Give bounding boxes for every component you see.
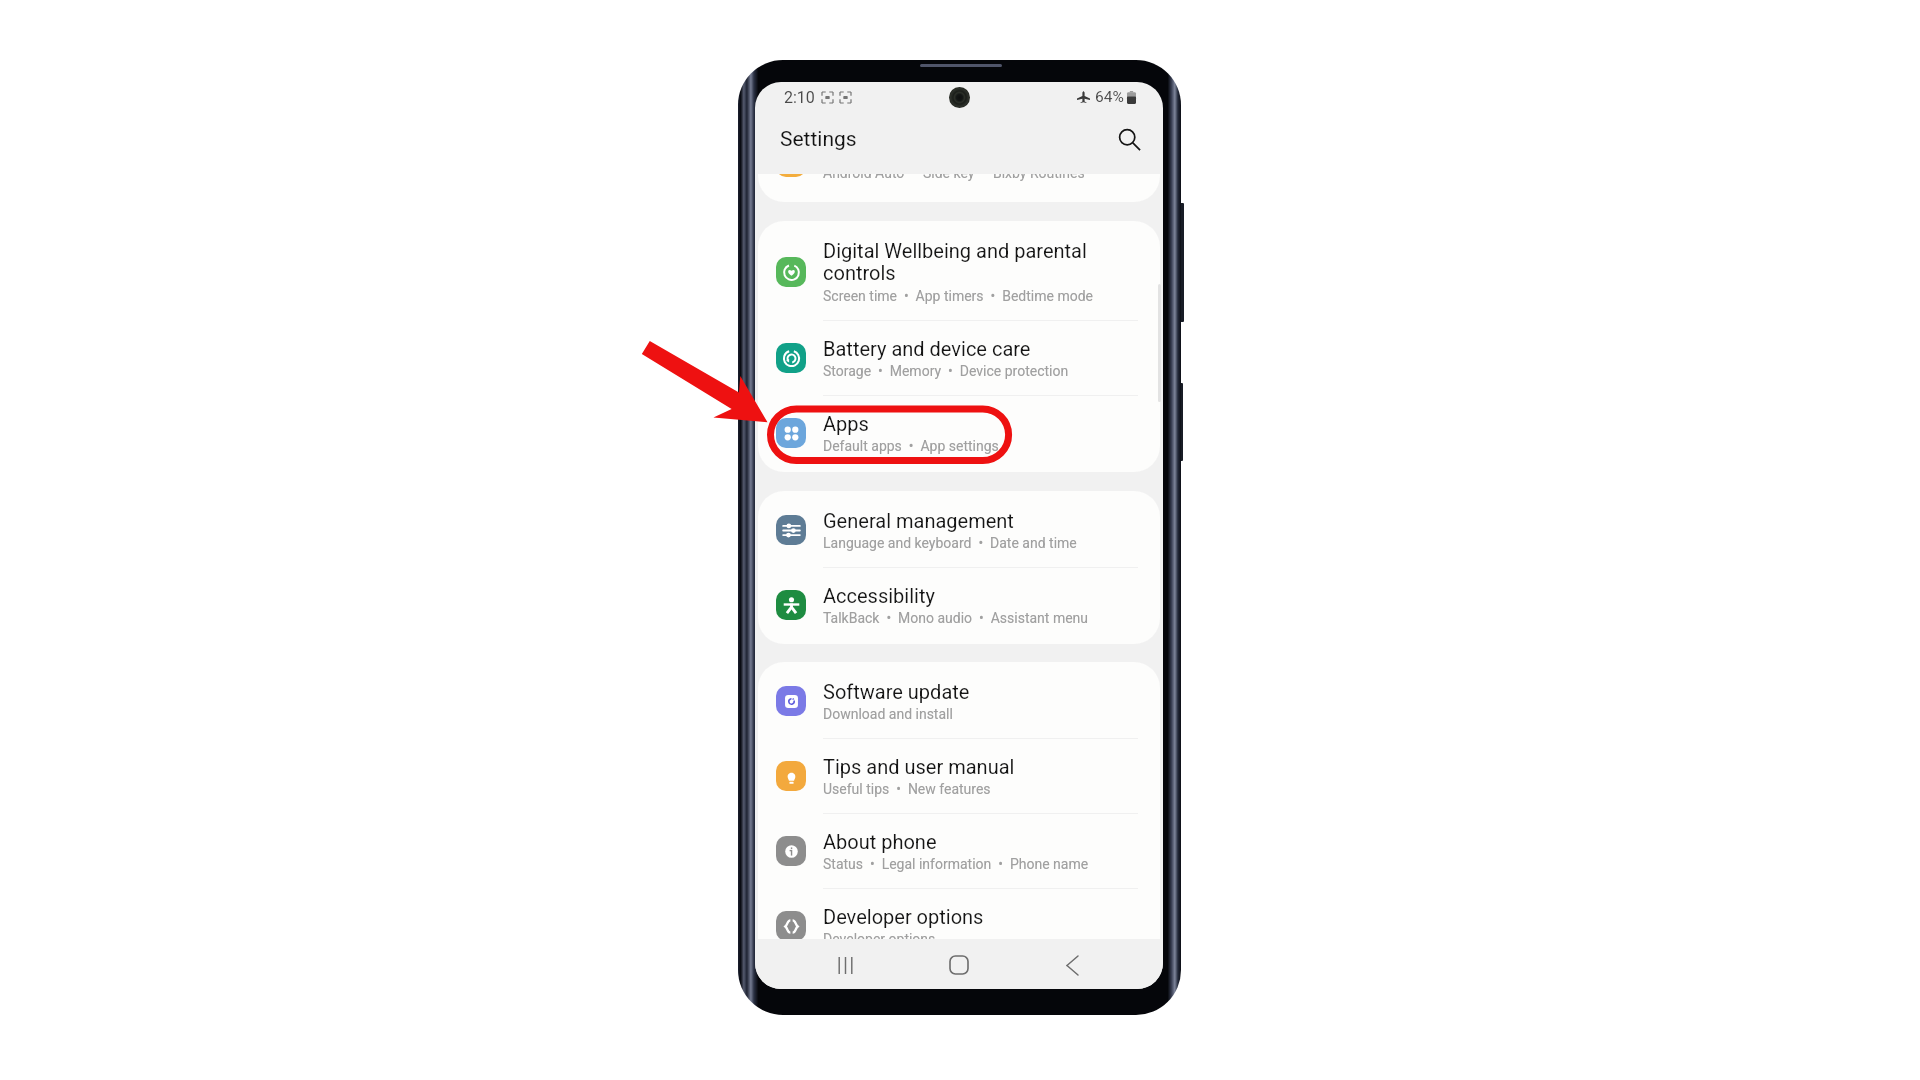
- button[interactable]: Developer options: [758, 889, 1160, 963]
- staticText: Android Auto • Side key • Bixby Routines: [823, 174, 1085, 181]
- staticText: Apps: [823, 412, 869, 435]
- staticText: 2:10: [784, 88, 815, 107]
- staticText: Software update: [823, 680, 970, 703]
- staticText: Screen time • App timers • Bedtime mode: [823, 288, 1093, 304]
- button[interactable]: About phone: [758, 814, 1160, 888]
- staticText: General management: [823, 509, 1014, 532]
- staticText: Accessibility: [823, 584, 935, 607]
- staticText: Developer options: [823, 905, 984, 928]
- button[interactable]: Tips and user manual: [758, 739, 1160, 813]
- staticText: Useful tips • New features: [823, 781, 991, 797]
- staticText: Developer options: [823, 931, 936, 947]
- staticText: Digital Wellbeing and parental controls: [823, 239, 1087, 285]
- button[interactable]: Apps: [758, 396, 1160, 470]
- staticText: Storage • Memory • Device protection: [823, 363, 1069, 379]
- staticText: Default apps • App settings: [823, 438, 999, 454]
- button[interactable]: Battery and device care: [758, 321, 1160, 395]
- button[interactable]: General management: [758, 493, 1160, 567]
- staticText: Language and keyboard • Date and time: [823, 535, 1077, 551]
- staticText: Battery and device care: [823, 337, 1031, 360]
- button[interactable]: Software update: [758, 664, 1160, 738]
- staticText: Download and install: [823, 706, 953, 722]
- staticText: Settings: [780, 127, 857, 152]
- button[interactable]: Digital Wellbeing and parental controls: [758, 223, 1160, 320]
- staticText: 64%: [1095, 88, 1124, 106]
- staticText: TalkBack • Mono audio • Assistant menu: [823, 610, 1089, 626]
- staticText: About phone: [823, 830, 937, 853]
- staticText: Status • Legal information • Phone name: [823, 856, 1089, 872]
- button[interactable]: Search: [1111, 121, 1147, 157]
- button[interactable]: Accessibility: [758, 568, 1160, 642]
- button[interactable]: Home: [935, 941, 983, 989]
- button[interactable]: Back: [1048, 941, 1096, 989]
- staticText: Tips and user manual: [823, 755, 1015, 778]
- button[interactable]: Recent apps: [821, 941, 869, 989]
